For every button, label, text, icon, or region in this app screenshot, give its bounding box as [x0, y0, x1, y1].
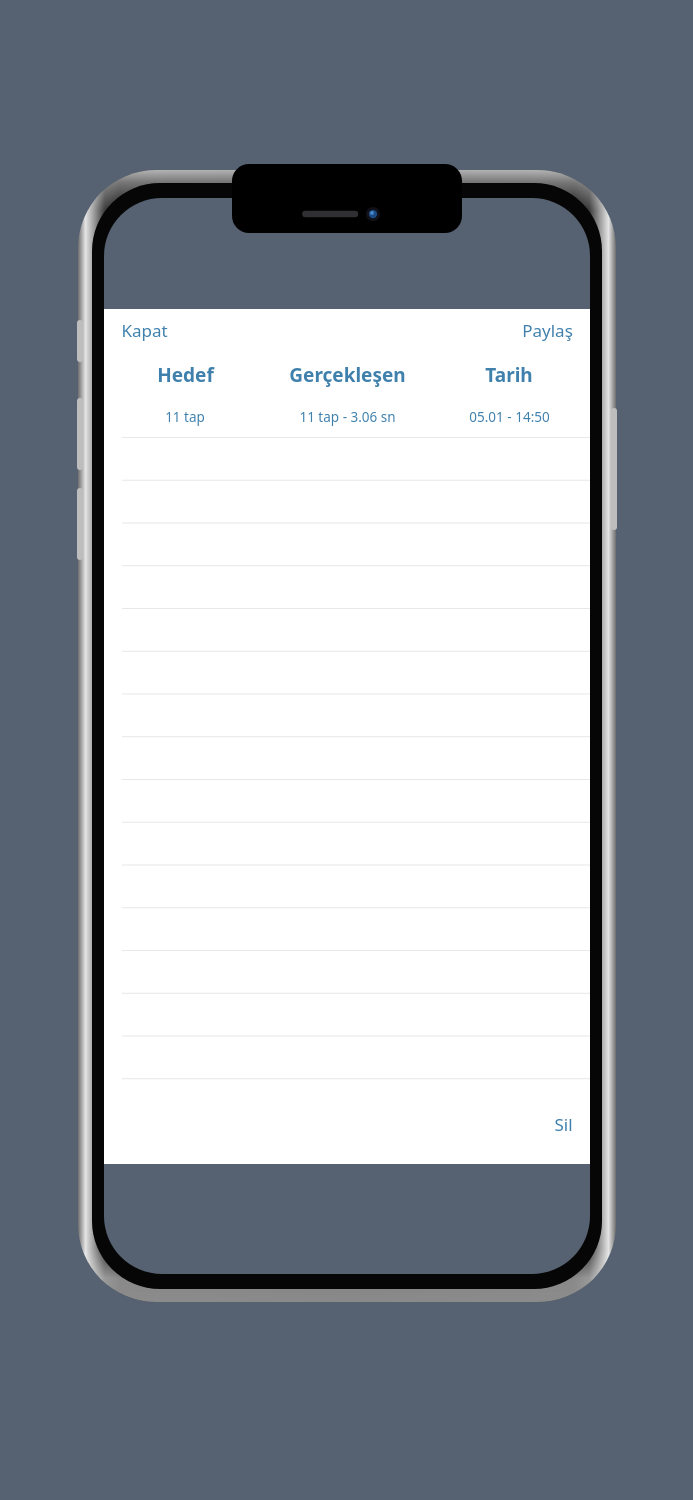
- staticText: 05.01 - 14:50: [469, 408, 550, 426]
- staticText: Gerçekleşen: [289, 362, 406, 388]
- staticText: Paylaş: [522, 319, 573, 342]
- staticText: Hedef: [157, 362, 214, 388]
- button[interactable]: 11 tap: [104, 399, 590, 435]
- button[interactable]: Kapat: [116, 312, 173, 349]
- staticText: Tarih: [485, 362, 533, 388]
- button[interactable]: Paylaş: [517, 312, 578, 349]
- staticText: 11 tap - 3.06 sn: [299, 408, 396, 426]
- button[interactable]: Sil: [549, 1106, 578, 1143]
- staticText: Sil: [554, 1113, 573, 1136]
- staticText: 11 tap: [165, 408, 205, 426]
- staticText: Kapat: [121, 319, 168, 342]
